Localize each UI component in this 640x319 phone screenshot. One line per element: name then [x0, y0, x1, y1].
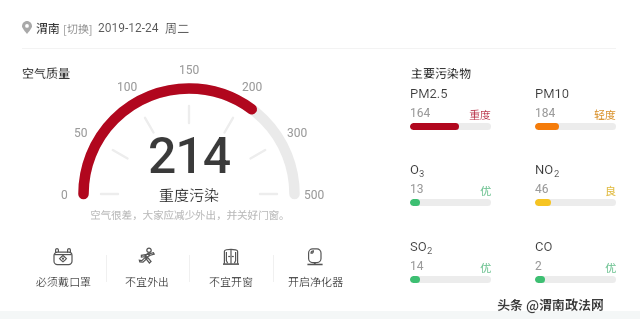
staticText: 2	[427, 245, 433, 256]
staticText: 重度污染	[159, 184, 220, 202]
staticText: 空气质量	[22, 64, 71, 81]
staticText: 开启净化器	[288, 273, 343, 289]
button[interactable]: SO	[410, 239, 491, 285]
staticText: 500	[304, 188, 325, 202]
staticText: PM10	[535, 86, 570, 101]
staticText: 2	[535, 259, 542, 273]
button[interactable]: PM2.5	[410, 86, 491, 132]
staticText: 不宜外出	[125, 273, 169, 289]
staticText: 2	[554, 168, 560, 179]
button[interactable]: O	[410, 162, 491, 208]
staticText: 周二	[165, 19, 190, 36]
staticText: 150	[179, 63, 200, 77]
staticText: 164	[410, 106, 431, 120]
button[interactable]: 渭南	[22, 19, 190, 36]
staticText: 头条 @渭南政法网	[497, 295, 605, 314]
staticText: 优	[410, 182, 491, 198]
staticText: CO	[535, 239, 553, 254]
staticText: 优	[535, 259, 616, 275]
staticText: 不宜开窗	[209, 273, 253, 289]
staticText: PM2.5	[410, 86, 448, 101]
staticText: 0	[61, 188, 68, 202]
button[interactable]: 不宜开窗	[189, 247, 273, 289]
staticText: 良	[535, 182, 616, 198]
button[interactable]: PM10	[535, 86, 616, 132]
staticText: 重度	[410, 106, 491, 122]
staticText: 200	[242, 80, 263, 94]
staticText: 必须戴口罩	[36, 273, 91, 289]
staticText: 214	[148, 127, 230, 186]
staticText: 46	[535, 182, 549, 196]
staticText: SO	[410, 239, 427, 254]
staticText: 100	[117, 80, 138, 94]
staticText: 主要污染物	[411, 64, 472, 81]
staticText: [切换]	[63, 20, 93, 36]
button[interactable]: 必须戴口罩	[21, 247, 105, 289]
staticText: 空气很差，大家应减少外出，并关好门窗。	[90, 207, 290, 222]
button[interactable]: 开启净化器	[273, 247, 357, 289]
staticText: 2019-12-24	[98, 21, 159, 35]
button[interactable]: 不宜外出	[105, 247, 189, 289]
staticText: 50	[74, 126, 88, 140]
staticText: 优	[410, 259, 491, 275]
staticText: 300	[287, 126, 308, 140]
staticText: 轻度	[535, 106, 616, 122]
staticText: 渭南	[36, 19, 61, 36]
button[interactable]: NO	[535, 162, 616, 208]
staticText: 14	[410, 259, 424, 273]
button[interactable]: CO	[535, 239, 616, 285]
staticText: 3	[419, 168, 425, 179]
staticText: NO	[535, 162, 554, 177]
staticText: 13	[410, 182, 424, 196]
staticText: O	[410, 162, 419, 177]
staticText: 184	[535, 106, 556, 120]
